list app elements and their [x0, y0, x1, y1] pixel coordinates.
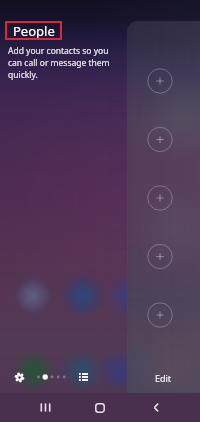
button[interactable]: Page indicator — [33, 367, 68, 387]
staticText: Edit — [155, 372, 172, 384]
button[interactable]: Edit — [146, 362, 180, 393]
staticText: Add your contacts so you can call or mes… — [8, 45, 110, 81]
button[interactable]: Settings — [9, 367, 29, 387]
button[interactable]: List view — [73, 367, 93, 387]
button[interactable]: Home — [89, 393, 111, 422]
button[interactable]: Back — [145, 393, 167, 422]
button[interactable]: Recent apps — [34, 393, 56, 422]
staticText: People — [13, 22, 55, 40]
